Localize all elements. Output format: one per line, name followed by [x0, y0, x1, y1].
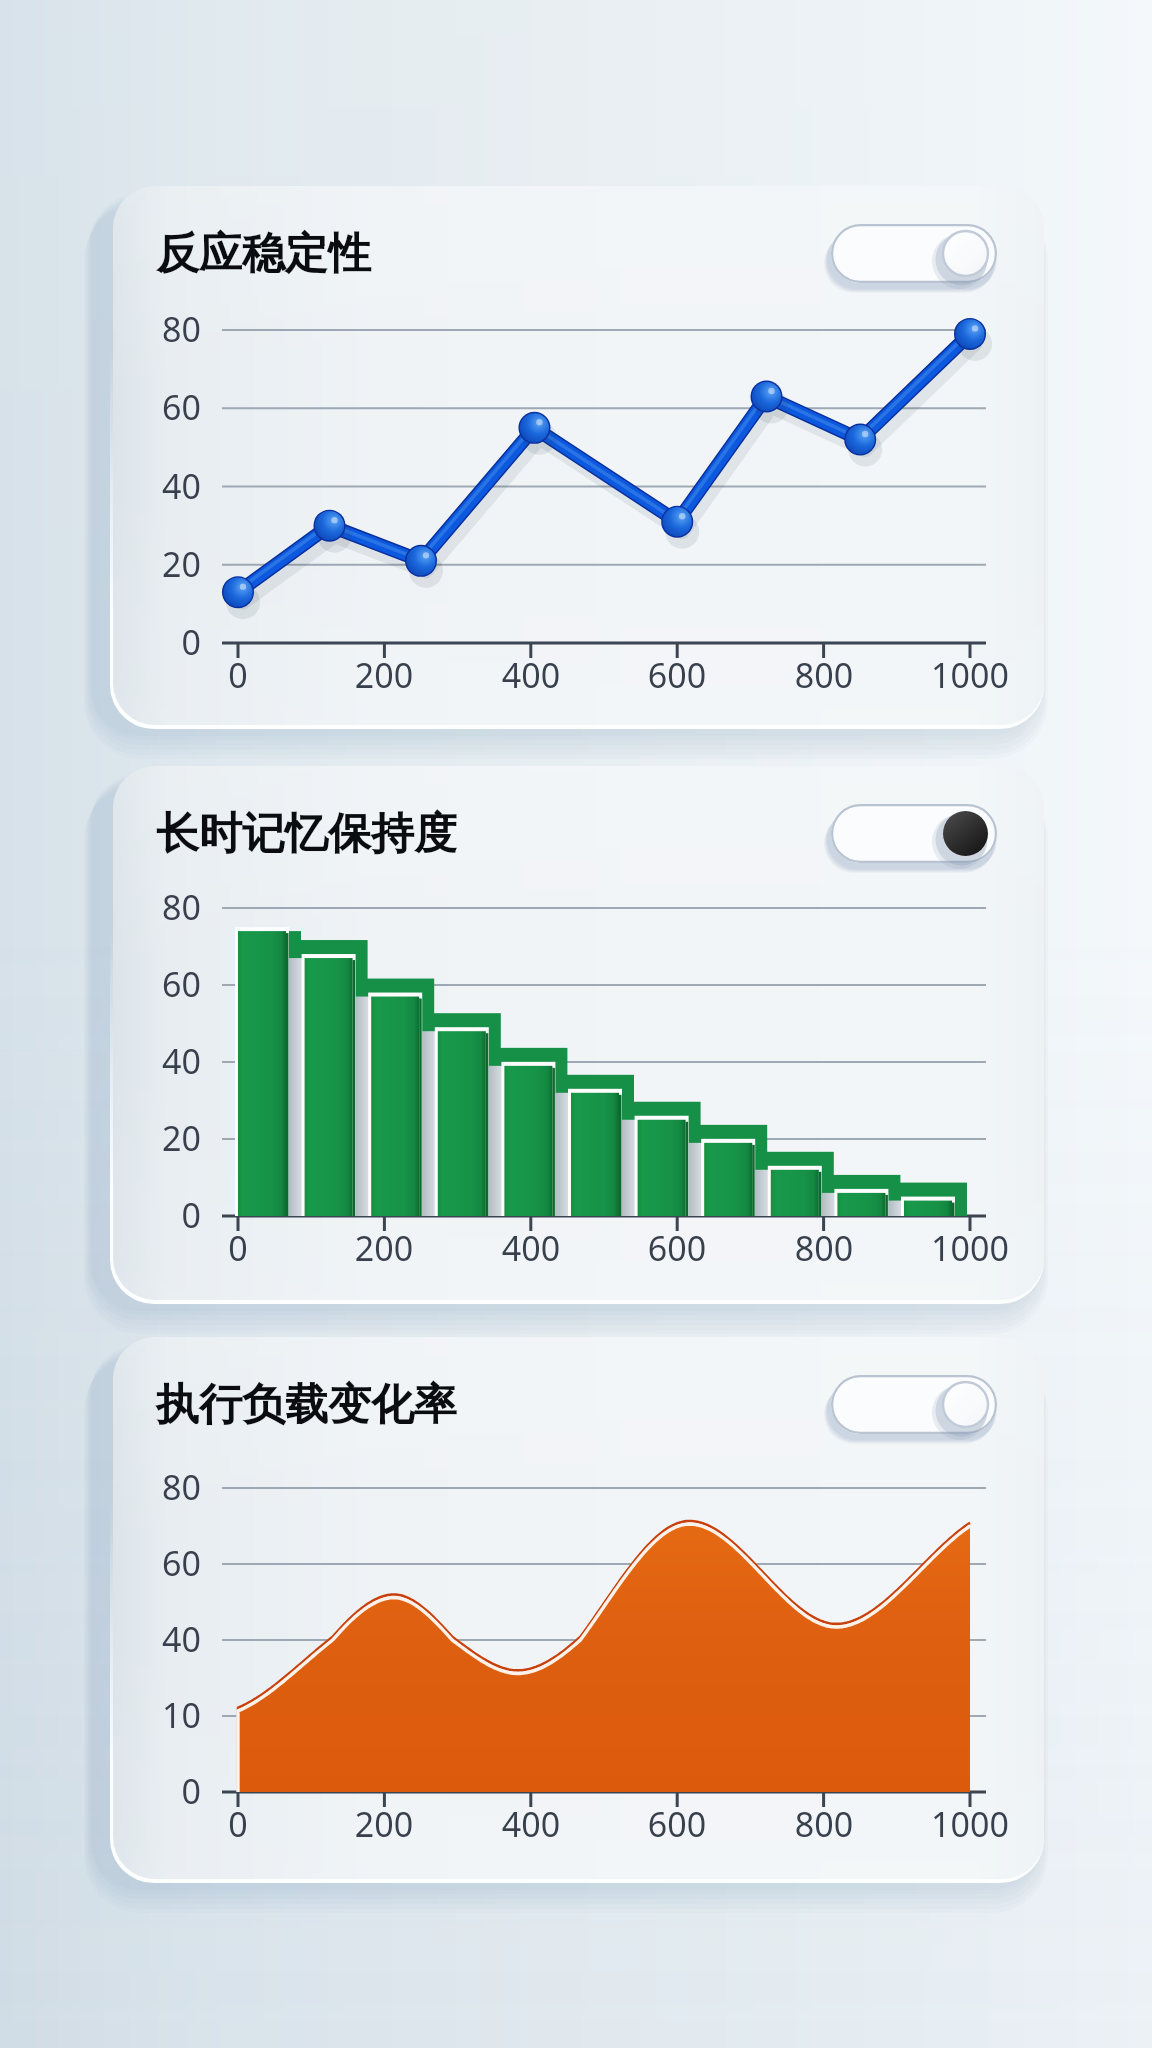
staticText: 40 — [100, 1038, 201, 1084]
staticText: 600 — [587, 1225, 767, 1271]
staticText: 400 — [441, 652, 621, 698]
staticText: 80 — [100, 1464, 201, 1510]
staticText: 1000 — [880, 1801, 1060, 1847]
staticText: 80 — [100, 306, 201, 352]
staticText: 800 — [734, 1801, 914, 1847]
staticText: 800 — [734, 1225, 914, 1271]
staticText: 10 — [100, 1692, 201, 1738]
staticText: 60 — [100, 961, 201, 1007]
staticText: 80 — [100, 884, 201, 930]
staticText: 反应稳定性 — [156, 227, 371, 281]
staticText: 20 — [100, 1115, 201, 1161]
button[interactable] — [113, 1337, 1044, 1879]
staticText: 200 — [294, 1801, 474, 1847]
staticText: 60 — [100, 1540, 201, 1586]
button[interactable] — [113, 186, 1044, 725]
button[interactable] — [113, 766, 1044, 1300]
staticText: 0 — [148, 1225, 328, 1271]
button[interactable]: Toggle off — [831, 1375, 997, 1447]
staticText: 400 — [441, 1801, 621, 1847]
staticText: 0 — [148, 652, 328, 698]
staticText: 60 — [100, 384, 201, 430]
staticText: 400 — [441, 1225, 621, 1271]
staticText: 0 — [148, 1801, 328, 1847]
button[interactable]: Toggle on — [831, 804, 997, 876]
staticText: 600 — [587, 652, 767, 698]
staticText: 40 — [100, 463, 201, 509]
staticText: 20 — [100, 541, 201, 587]
staticText: 0 — [100, 1768, 201, 1814]
button[interactable]: Toggle off — [831, 224, 997, 296]
staticText: 执行负载变化率 — [156, 1378, 457, 1432]
staticText: 1000 — [880, 652, 1060, 698]
staticText: 0 — [100, 1192, 201, 1238]
staticText: 0 — [100, 619, 201, 665]
staticText: 1000 — [880, 1225, 1060, 1271]
staticText: 长时记忆保持度 — [156, 807, 457, 861]
staticText: 200 — [294, 652, 474, 698]
staticText: 800 — [734, 652, 914, 698]
staticText: 600 — [587, 1801, 767, 1847]
staticText: 40 — [100, 1616, 201, 1662]
staticText: 200 — [294, 1225, 474, 1271]
